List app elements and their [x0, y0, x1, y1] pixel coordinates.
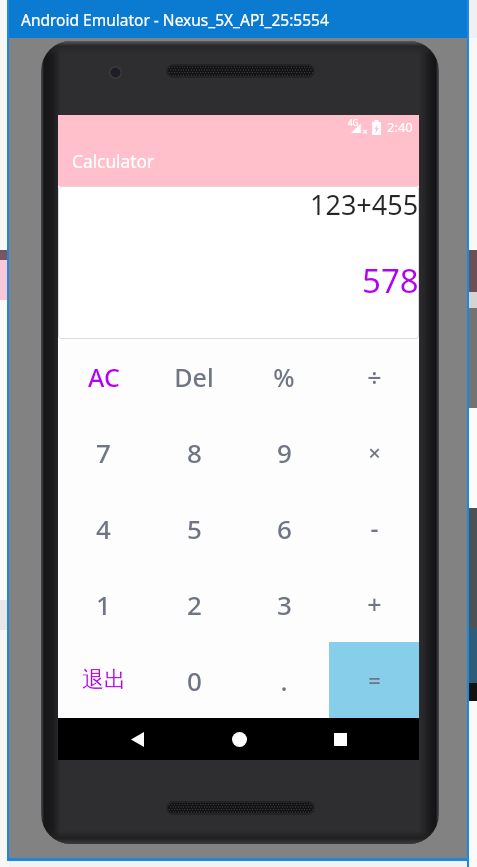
button[interactable]: - [329, 490, 419, 566]
button[interactable]: 3 [239, 566, 329, 642]
button[interactable]: 5 [149, 490, 239, 566]
button[interactable]: 0 [149, 642, 239, 718]
staticText: Calculator [72, 150, 155, 174]
button[interactable]: Recent apps [317, 718, 363, 760]
button[interactable]: . [239, 642, 329, 718]
staticText: 578 [362, 258, 419, 303]
staticText: 123+455 [310, 186, 419, 223]
button[interactable]: Home [216, 718, 262, 760]
button[interactable]: Back [114, 718, 160, 760]
staticText: 退出 [82, 666, 126, 694]
staticText: 9 [277, 435, 292, 470]
staticText: Android Emulator - Nexus_5X_API_25:5554 [21, 9, 329, 30]
staticText: . [280, 663, 288, 698]
button[interactable]: 6 [239, 490, 329, 566]
staticText: AC [88, 360, 120, 394]
staticText: × [368, 437, 381, 467]
button[interactable]: ÷ [329, 339, 419, 414]
staticText: 2:40 [387, 118, 413, 136]
staticText: 6 [277, 511, 292, 546]
button[interactable]: 8 [149, 414, 239, 490]
staticText: 7 [96, 435, 111, 470]
staticText: Del [174, 360, 214, 394]
staticText: - [370, 511, 379, 545]
staticText: ÷ [367, 360, 382, 394]
button[interactable]: AC [58, 339, 149, 414]
button[interactable]: 1 [58, 566, 149, 642]
staticText: 0 [187, 663, 202, 698]
button[interactable]: + [329, 566, 419, 642]
button[interactable]: = [329, 642, 419, 718]
staticText: 4 [96, 511, 111, 546]
button[interactable]: Del [149, 339, 239, 414]
staticText: % [273, 360, 295, 394]
staticText: 5 [187, 511, 202, 546]
staticText: + [367, 587, 382, 621]
staticText: 8 [187, 435, 202, 470]
button[interactable]: 9 [239, 414, 329, 490]
button[interactable]: 4 [58, 490, 149, 566]
button[interactable]: 7 [58, 414, 149, 490]
button[interactable]: % [239, 339, 329, 414]
staticText: 4G [348, 117, 359, 128]
button[interactable]: 2 [149, 566, 239, 642]
button[interactable]: × [329, 414, 419, 490]
staticText: 3 [277, 587, 292, 622]
button[interactable]: 退出 [58, 642, 149, 718]
staticText: 2 [187, 587, 202, 622]
staticText: 1 [96, 587, 111, 622]
staticText: = [368, 665, 381, 695]
